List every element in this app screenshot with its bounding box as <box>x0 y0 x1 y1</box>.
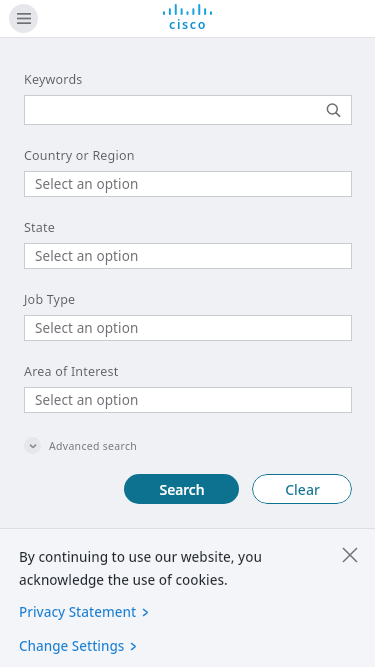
staticText: Search <box>159 480 205 499</box>
staticText: Country or Region <box>24 147 135 164</box>
button[interactable]: Advanced search <box>24 435 138 456</box>
button[interactable]: Select an option <box>24 387 352 413</box>
button[interactable]: Select an option <box>24 315 352 341</box>
staticText: Change Settings <box>19 637 125 655</box>
staticText: Job Type <box>24 291 76 308</box>
staticText: Area of Interest <box>24 363 119 380</box>
button[interactable]: Select an option <box>24 243 352 269</box>
button[interactable]: Select an option <box>24 171 352 197</box>
staticText: acknowledge the use of cookies. <box>19 571 228 589</box>
button[interactable]: Change Settings <box>19 637 137 655</box>
staticText: Select an option <box>35 247 139 265</box>
staticText: Advanced search <box>49 439 138 453</box>
staticText: State <box>24 219 55 236</box>
button[interactable]: Menu <box>9 4 38 33</box>
staticText: Keywords <box>24 71 83 88</box>
button[interactable]: Search <box>124 474 239 504</box>
staticText: Select an option <box>35 319 139 337</box>
button[interactable]: Search <box>24 95 352 125</box>
button[interactable]: Clear <box>252 474 352 504</box>
staticText: Privacy Statement <box>19 603 137 621</box>
button[interactable]: Privacy Statement <box>19 603 149 621</box>
staticText: By continuing to use our website, you <box>19 548 262 566</box>
staticText: Select an option <box>35 391 139 409</box>
staticText: cisco <box>169 16 207 33</box>
staticText: Select an option <box>35 175 139 193</box>
staticText: Clear <box>285 480 320 499</box>
button[interactable]: Close <box>337 542 363 568</box>
other: Search <box>324 101 342 119</box>
